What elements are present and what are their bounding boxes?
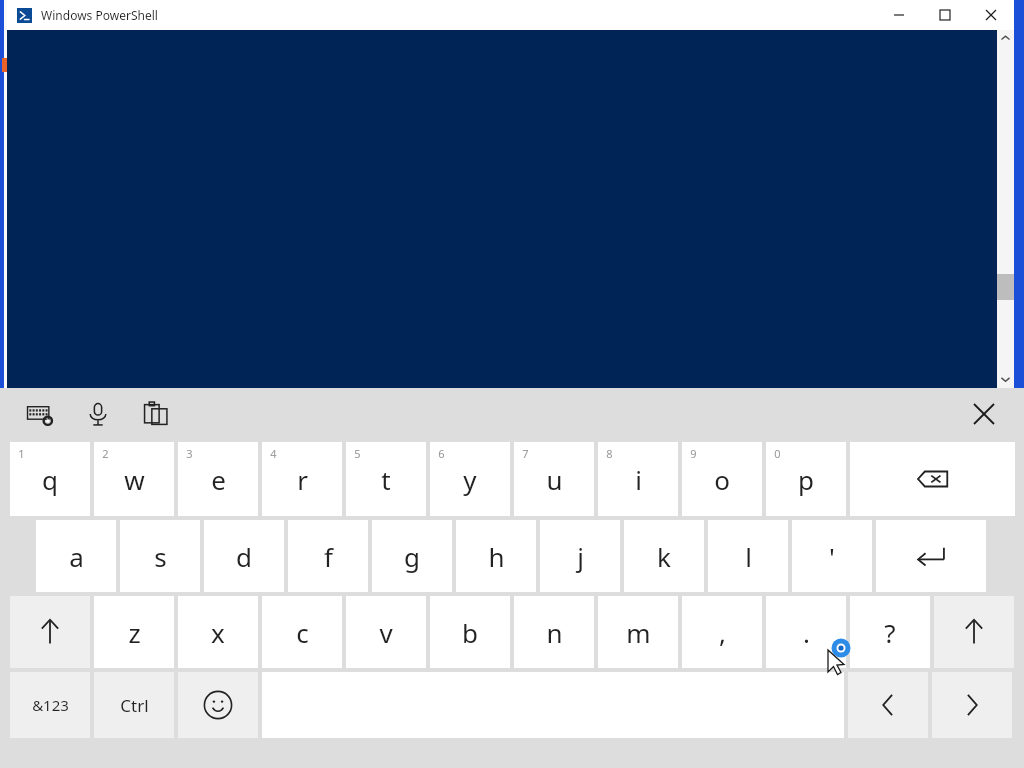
button[interactable]: Emoji xyxy=(178,672,258,738)
button[interactable]: 4 xyxy=(262,442,342,516)
button[interactable]: g xyxy=(372,520,452,592)
button[interactable]: Scroll up xyxy=(997,30,1014,47)
button[interactable]: Scroll down xyxy=(997,371,1014,388)
button[interactable]: , xyxy=(682,596,762,668)
staticText: d xyxy=(236,539,252,574)
button[interactable]: s xyxy=(120,520,200,592)
staticText: z xyxy=(128,615,141,650)
button[interactable]: Close xyxy=(968,0,1014,30)
staticText: c xyxy=(296,615,309,650)
staticText: f xyxy=(324,539,333,574)
button[interactable]: 2 xyxy=(94,442,174,516)
button[interactable]: Backspace xyxy=(850,442,1015,516)
staticText: s xyxy=(154,539,167,574)
staticText: 0 xyxy=(774,446,781,461)
button[interactable]: Maximize xyxy=(922,0,968,30)
staticText: y xyxy=(463,462,477,497)
button[interactable]: x xyxy=(178,596,258,668)
staticText: . xyxy=(803,615,810,650)
button[interactable]: 9 xyxy=(682,442,762,516)
staticText: 6 xyxy=(438,446,445,461)
button[interactable]: Shift xyxy=(10,596,90,668)
staticText: x xyxy=(211,615,225,650)
staticText: m xyxy=(626,615,651,650)
button[interactable]: m xyxy=(598,596,678,668)
staticText: , xyxy=(719,615,726,650)
staticText: a xyxy=(69,539,84,574)
button[interactable]: 7 xyxy=(514,442,594,516)
staticText: Ctrl xyxy=(120,694,149,717)
button[interactable]: a xyxy=(36,520,116,592)
button[interactable]: v xyxy=(346,596,426,668)
button[interactable]: Minimize xyxy=(876,0,922,30)
staticText: ' xyxy=(829,539,835,574)
staticText: b xyxy=(462,615,478,650)
staticText: i xyxy=(635,462,642,497)
button[interactable]: Enter xyxy=(876,520,986,592)
staticText: 4 xyxy=(270,446,277,461)
staticText: p xyxy=(798,462,814,497)
button[interactable]: Keyboard settings xyxy=(20,394,60,434)
button[interactable]: n xyxy=(514,596,594,668)
staticText: l xyxy=(745,539,752,574)
button[interactable]: h xyxy=(456,520,536,592)
staticText: 3 xyxy=(186,446,193,461)
button[interactable]: Shift xyxy=(934,596,1014,668)
staticText: Windows PowerShell xyxy=(41,7,158,23)
staticText: 2 xyxy=(102,446,109,461)
button[interactable]: Clipboard xyxy=(136,394,176,434)
button[interactable]: Left xyxy=(848,672,928,738)
button[interactable]: 0 xyxy=(766,442,846,516)
button[interactable]: 5 xyxy=(346,442,426,516)
button[interactable]: z xyxy=(94,596,174,668)
staticText: g xyxy=(404,539,420,574)
staticText: 5 xyxy=(354,446,361,461)
button[interactable]: 8 xyxy=(598,442,678,516)
button[interactable]: Close keyboard xyxy=(964,394,1004,434)
button[interactable]: ? xyxy=(850,596,930,668)
button[interactable]: j xyxy=(540,520,620,592)
button[interactable]: b xyxy=(430,596,510,668)
button[interactable]: 6 xyxy=(430,442,510,516)
button[interactable]: Dictate xyxy=(78,394,118,434)
button[interactable]: . xyxy=(766,596,846,668)
staticText: j xyxy=(577,539,584,574)
button[interactable]: 3 xyxy=(178,442,258,516)
staticText: v xyxy=(379,615,393,650)
button[interactable]: Space xyxy=(262,672,844,738)
staticText: q xyxy=(42,462,58,497)
staticText: e xyxy=(211,462,226,497)
staticText: 1 xyxy=(18,446,25,461)
staticText: t xyxy=(381,462,391,497)
button[interactable]: Right xyxy=(932,672,1012,738)
staticText: k xyxy=(657,539,671,574)
button[interactable]: k xyxy=(624,520,704,592)
button[interactable]: d xyxy=(204,520,284,592)
staticText: 9 xyxy=(690,446,697,461)
button[interactable]: f xyxy=(288,520,368,592)
staticText: h xyxy=(488,539,505,574)
staticText: ? xyxy=(884,615,896,650)
staticText: w xyxy=(124,462,145,497)
staticText: 7 xyxy=(522,446,529,461)
button[interactable]: l xyxy=(708,520,788,592)
button[interactable]: 1 xyxy=(10,442,90,516)
button[interactable]: ' xyxy=(792,520,872,592)
button[interactable]: Ctrl xyxy=(94,672,174,738)
staticText: n xyxy=(546,615,563,650)
staticText: r xyxy=(297,462,308,497)
staticText: o xyxy=(714,462,730,497)
button[interactable]: c xyxy=(262,596,342,668)
staticText: &123 xyxy=(32,695,69,715)
button[interactable]: &123 xyxy=(10,672,90,738)
staticText: u xyxy=(546,462,563,497)
staticText: 8 xyxy=(606,446,613,461)
